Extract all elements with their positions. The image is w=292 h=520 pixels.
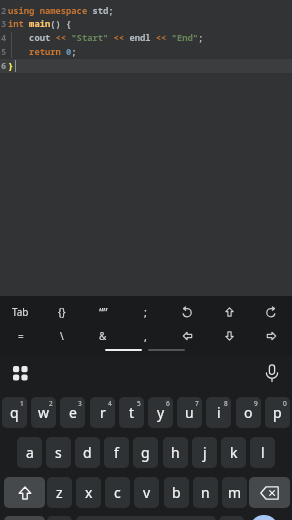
button[interactable] — [6, 359, 34, 387]
button[interactable]: k — [221, 437, 246, 468]
staticText: int main() { — [8, 18, 72, 30]
staticText: p — [273, 403, 282, 422]
button[interactable]: q — [2, 397, 27, 428]
staticText: 5 — [137, 399, 141, 408]
button[interactable] — [219, 516, 244, 520]
button[interactable]: f — [104, 437, 129, 468]
button[interactable]: Tab — [0, 296, 41, 327]
button[interactable]: x — [76, 477, 101, 508]
button[interactable]: z — [47, 477, 72, 508]
staticText: 5 — [1, 46, 7, 58]
staticText: 4 — [108, 399, 112, 408]
button[interactable]: l — [250, 437, 275, 468]
button[interactable]: , — [124, 327, 166, 345]
button[interactable]: a — [17, 437, 42, 468]
staticText: n — [201, 483, 210, 502]
button[interactable]: & — [82, 327, 124, 345]
button[interactable]: d — [75, 437, 100, 468]
button[interactable]: “” — [82, 296, 124, 327]
button[interactable]: t — [119, 397, 144, 428]
button[interactable]: s — [46, 437, 71, 468]
staticText: x — [85, 483, 93, 502]
staticText: j — [203, 443, 207, 462]
staticText: 1 — [20, 399, 24, 408]
button[interactable]: w — [31, 397, 56, 428]
button[interactable] — [47, 516, 72, 520]
button[interactable]: p — [265, 397, 290, 428]
button[interactable]: ; — [124, 296, 166, 327]
staticText: c — [114, 483, 121, 502]
button[interactable]: m — [222, 477, 247, 508]
staticText: f — [114, 443, 119, 462]
button[interactable]: i — [206, 397, 231, 428]
staticText: o — [244, 403, 253, 422]
staticText: d — [83, 443, 92, 462]
staticText: 2 — [49, 399, 53, 408]
staticText: = — [18, 329, 24, 343]
staticText: b — [172, 483, 181, 502]
button[interactable]: j — [192, 437, 217, 468]
button[interactable] — [208, 327, 250, 345]
button[interactable] — [208, 296, 250, 327]
staticText: 6 — [166, 399, 170, 408]
staticText: q — [10, 403, 19, 422]
staticText: v — [143, 483, 151, 502]
staticText: 0 — [283, 399, 287, 408]
staticText: 4 — [1, 32, 7, 44]
staticText: h — [171, 443, 180, 462]
button[interactable] — [249, 477, 290, 508]
staticText: 3 — [1, 18, 7, 30]
staticText: “” — [99, 304, 108, 320]
button[interactable] — [4, 516, 45, 520]
button[interactable]: c — [105, 477, 130, 508]
button[interactable]: h — [163, 437, 188, 468]
button[interactable] — [4, 477, 45, 508]
staticText: cout << "Start" << endl << "End"; — [8, 32, 204, 44]
button[interactable]: g — [133, 437, 158, 468]
staticText: 8 — [224, 399, 228, 408]
staticText: z — [56, 483, 63, 502]
button[interactable]: {} — [41, 296, 82, 327]
staticText: } — [8, 60, 14, 72]
staticText: 9 — [254, 399, 258, 408]
staticText: 7 — [195, 399, 199, 408]
button[interactable]: b — [164, 477, 189, 508]
button[interactable] — [166, 296, 208, 327]
button[interactable]: r — [90, 397, 115, 428]
staticText: l — [261, 443, 265, 462]
button[interactable]: = — [0, 327, 41, 345]
staticText: ; — [144, 304, 147, 319]
staticText: {} — [58, 305, 66, 319]
staticText: m — [228, 483, 242, 502]
button[interactable] — [250, 296, 292, 327]
staticText: e — [69, 403, 77, 422]
button[interactable] — [249, 515, 279, 520]
staticText: g — [141, 443, 150, 462]
button[interactable]: u — [177, 397, 202, 428]
staticText: Tab — [12, 305, 29, 319]
staticText: t — [129, 403, 135, 422]
button[interactable]: \ — [41, 327, 82, 345]
staticText: y — [157, 403, 165, 422]
staticText: 2 — [1, 5, 7, 17]
staticText: 3 — [78, 399, 82, 408]
staticText: s — [55, 443, 62, 462]
button[interactable] — [258, 359, 286, 387]
button[interactable] — [250, 327, 292, 345]
button[interactable]: n — [193, 477, 218, 508]
staticText: u — [185, 403, 194, 422]
staticText: 6 — [1, 60, 7, 72]
staticText: a — [26, 443, 34, 462]
staticText: & — [99, 329, 107, 343]
button[interactable]: v — [134, 477, 159, 508]
staticText: i — [217, 403, 221, 422]
button[interactable] — [166, 327, 208, 345]
staticText: w — [38, 403, 50, 422]
button[interactable]: o — [236, 397, 261, 428]
button[interactable]: e — [60, 397, 85, 428]
staticText: \ — [60, 329, 64, 343]
staticText: return 0; — [8, 46, 77, 58]
staticText: using namespace std; — [8, 5, 114, 17]
button[interactable]: y — [148, 397, 173, 428]
